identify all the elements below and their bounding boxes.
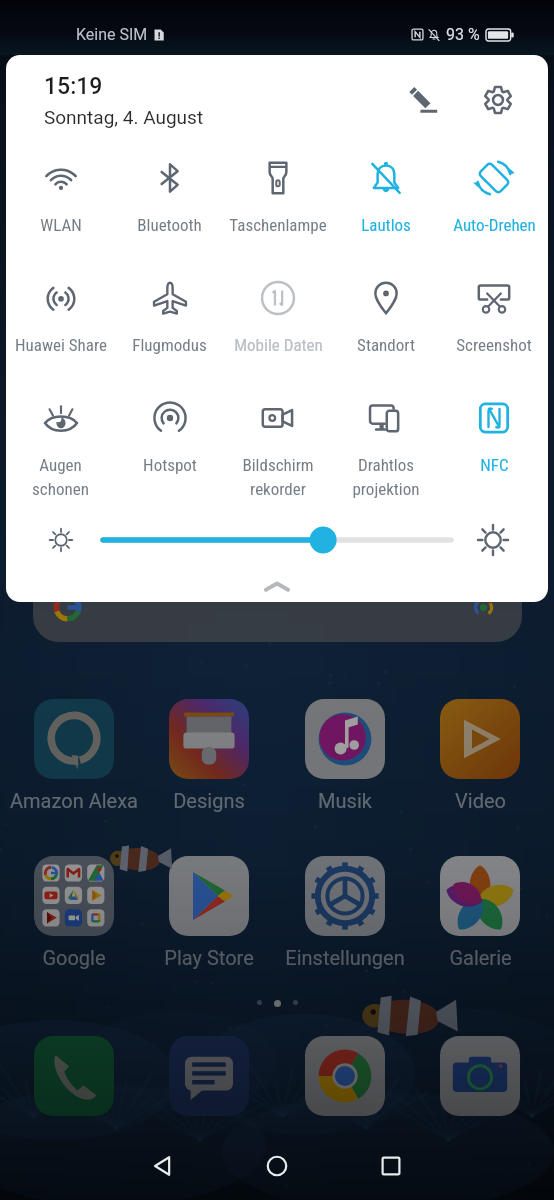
- button[interactable]: Designs: [127, 699, 291, 812]
- button[interactable]: Augen schonen: [6, 385, 115, 505]
- button[interactable]: Amazon Alexa: [0, 699, 156, 812]
- staticText: WLAN: [40, 215, 82, 235]
- button[interactable]: Auto-Drehen: [440, 145, 548, 265]
- staticText: Bildschirm rekorder: [242, 455, 314, 499]
- staticText: NFC: [480, 455, 509, 475]
- button[interactable]: Einstellungen: [263, 856, 427, 969]
- button[interactable]: Google: [0, 856, 156, 969]
- button[interactable]: Video: [398, 699, 554, 812]
- staticText: 15:19: [44, 73, 103, 100]
- staticText: Einstellungen: [285, 946, 405, 969]
- button[interactable]: WLAN: [6, 145, 115, 265]
- button[interactable]: Helligkeit hoch: [470, 517, 516, 563]
- staticText: Sonntag, 4. August: [44, 106, 204, 128]
- button[interactable]: Flugmodus: [115, 265, 224, 385]
- staticText: Flugmodus: [132, 335, 207, 355]
- button[interactable]: Bearbeiten: [398, 74, 450, 126]
- button[interactable]: App: [440, 1036, 520, 1116]
- staticText: 93 %: [446, 25, 480, 44]
- staticText: Standort: [357, 335, 415, 355]
- staticText: Lautlos: [361, 215, 411, 235]
- staticText: Augen schonen: [32, 455, 89, 499]
- button[interactable]: Play Store: [127, 856, 291, 969]
- staticText: Mobile Daten: [234, 335, 323, 355]
- button[interactable]: Zurück: [124, 1132, 202, 1200]
- staticText: Taschenlampe: [229, 215, 327, 235]
- staticText: Play Store: [164, 946, 254, 969]
- button[interactable]: Standort: [332, 265, 440, 385]
- button[interactable]: App: [169, 1036, 249, 1116]
- button[interactable]: Bildschirm rekorder: [224, 385, 332, 505]
- button[interactable]: Helligkeit: [101, 520, 453, 560]
- staticText: Video: [455, 789, 506, 812]
- staticText: Huawei Share: [15, 335, 107, 355]
- staticText: Galerie: [449, 946, 512, 969]
- button[interactable]: Taschenlampe: [224, 145, 332, 265]
- button[interactable]: Übersicht: [352, 1132, 430, 1200]
- staticText: Musik: [318, 789, 372, 812]
- staticText: Amazon Alexa: [10, 789, 138, 812]
- button[interactable]: App: [34, 1036, 114, 1116]
- button[interactable]: NFC: [440, 385, 548, 505]
- button[interactable]: App: [305, 1036, 385, 1116]
- button[interactable]: Galerie: [398, 856, 554, 969]
- button[interactable]: Drahtlos projektion: [332, 385, 440, 505]
- staticText: Designs: [173, 789, 245, 812]
- button[interactable]: Screenshot: [440, 265, 548, 385]
- button[interactable]: Bluetooth: [115, 145, 224, 265]
- button[interactable]: Lautlos: [332, 145, 440, 265]
- staticText: Google: [42, 946, 106, 969]
- staticText: Hotspot: [143, 455, 197, 475]
- staticText: Screenshot: [456, 335, 532, 355]
- button[interactable]: Suche: [33, 562, 522, 642]
- button[interactable]: Hotspot: [115, 385, 224, 505]
- staticText: Drahtlos projektion: [352, 455, 420, 499]
- button[interactable]: Einstellungen: [472, 74, 524, 126]
- button[interactable]: Mobile Daten: [224, 265, 332, 385]
- button[interactable]: Huawei Share: [6, 265, 115, 385]
- button[interactable]: Startbildschirm: [238, 1132, 316, 1200]
- staticText: Keine SIM: [76, 25, 148, 44]
- staticText: Bluetooth: [137, 215, 202, 235]
- button[interactable]: Musik: [263, 699, 427, 812]
- staticText: Auto-Drehen: [453, 215, 536, 235]
- button[interactable]: Einklappen: [6, 575, 548, 602]
- button[interactable]: Helligkeit niedrig: [38, 517, 84, 563]
